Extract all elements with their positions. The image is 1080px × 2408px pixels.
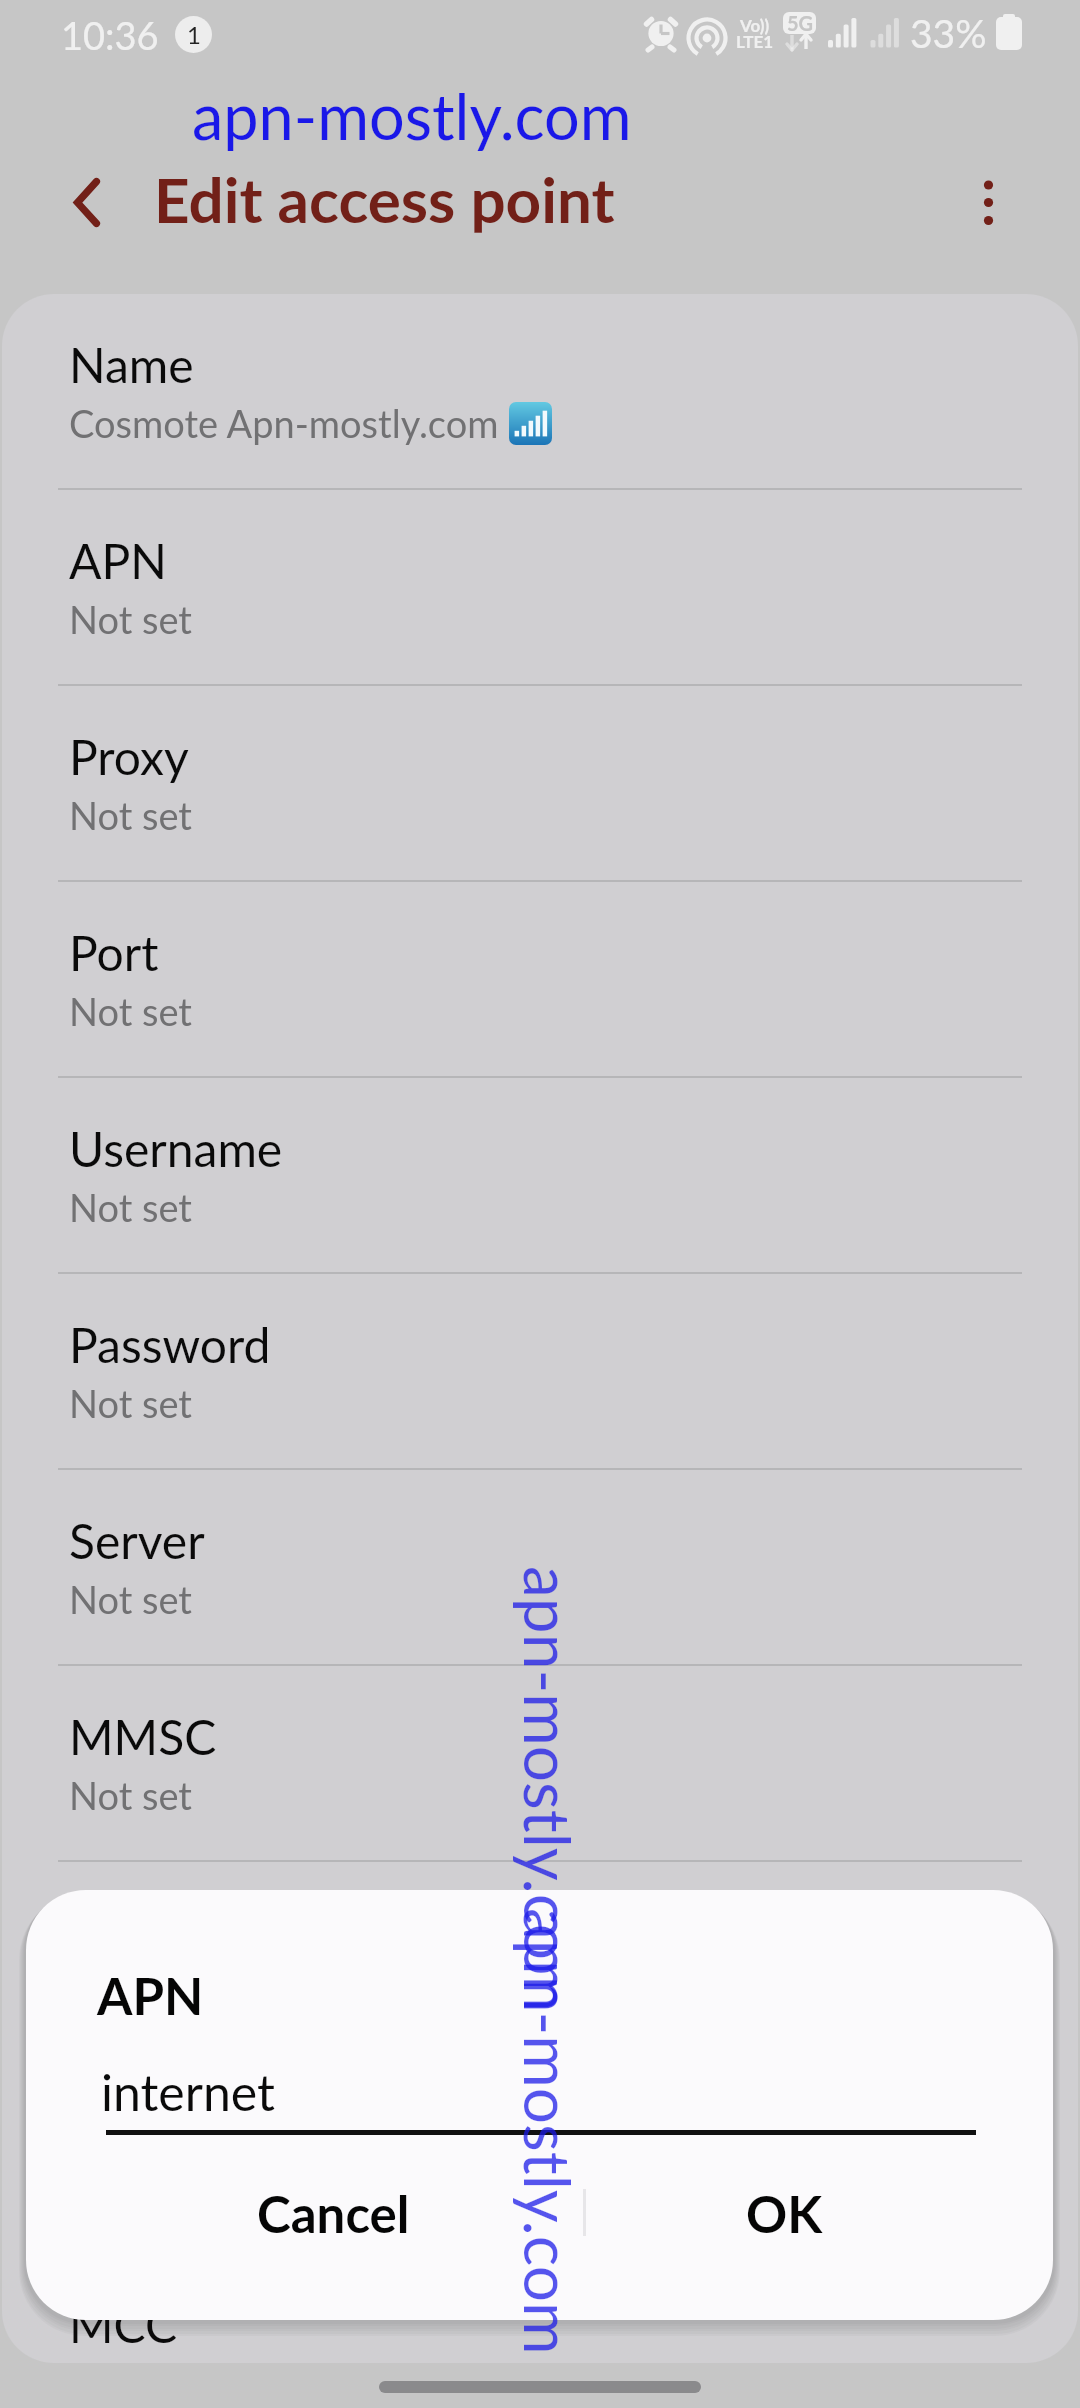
button[interactable]: APN <box>2 490 1078 684</box>
staticText: 10:36 <box>61 12 159 58</box>
staticText: apn-mostly.com <box>510 1908 587 2355</box>
button[interactable]: More options <box>944 158 1032 246</box>
staticText: apn-mostly.com <box>192 78 632 154</box>
staticText: Not set <box>69 596 192 642</box>
staticText: Password <box>69 1316 271 1374</box>
staticText: MMSC <box>69 1708 217 1766</box>
staticText: 5G <box>787 11 814 35</box>
button[interactable]: Back <box>30 158 118 246</box>
button[interactable]: Cancel <box>26 2158 584 2268</box>
staticText: Port <box>69 924 159 982</box>
button[interactable]: MMS proxy <box>2 1862 1078 2056</box>
button[interactable]: Username <box>2 1078 1078 1272</box>
staticText: Cancel <box>257 2183 410 2244</box>
button[interactable]: Password <box>2 1274 1078 1468</box>
staticText: MMS port <box>69 2100 286 2158</box>
button[interactable]: MMS port <box>2 2058 1078 2252</box>
button[interactable]: MMSC <box>2 1666 1078 1860</box>
staticText: 1 <box>187 20 201 49</box>
staticText: Username <box>69 1120 283 1178</box>
staticText: internet <box>101 2062 276 2122</box>
button[interactable]: Server <box>2 1470 1078 1664</box>
staticText: Name <box>69 336 194 394</box>
staticText: APN <box>97 1965 204 2026</box>
button[interactable]: OK <box>584 2158 1053 2268</box>
staticText: Vo)) <box>740 15 770 35</box>
staticText: Cosmote Apn-mostly.com <box>69 400 499 446</box>
staticText: Edit access point <box>154 162 615 236</box>
button[interactable]: Port <box>2 882 1078 1076</box>
staticText: LTE1 <box>736 31 774 51</box>
staticText: OK <box>746 2183 823 2244</box>
button[interactable]: Name <box>2 294 1078 488</box>
staticText: apn-mostly.com <box>510 1566 587 2013</box>
staticText: Not set <box>69 1380 192 1426</box>
staticText: Not set <box>69 1772 192 1818</box>
staticText: Not set <box>69 1184 192 1230</box>
button[interactable]: MCC <box>2 2254 1078 2363</box>
staticText: MCC <box>69 2296 178 2354</box>
button[interactable]: Proxy <box>2 686 1078 880</box>
staticText: Proxy <box>69 728 189 786</box>
staticText: Server <box>69 1512 205 1570</box>
staticText: APN <box>69 532 167 590</box>
staticText: Not set <box>69 1576 192 1622</box>
staticText: Not set <box>69 792 192 838</box>
staticText: 33% <box>910 10 987 57</box>
staticText: Not set <box>69 1968 192 2014</box>
staticText: Not set <box>69 988 192 1034</box>
